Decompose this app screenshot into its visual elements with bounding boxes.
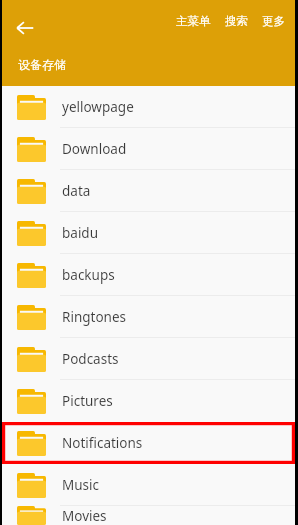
button[interactable]: backups [2,254,295,296]
staticText: Music [62,476,100,494]
staticText: data [62,182,91,200]
staticText: Movies [62,507,107,525]
button[interactable]: baidu [2,212,295,254]
staticText: baidu [62,224,99,242]
staticText: Download [62,140,127,158]
staticText: Ringtones [62,308,126,326]
button[interactable]: Music [2,464,295,506]
staticText: Pictures [62,392,113,410]
button[interactable]: 搜索 [225,14,248,28]
staticText: backups [62,266,115,284]
button[interactable]: Movies [2,506,295,525]
staticText: 设备存储 [18,57,66,72]
button[interactable]: 设备存储 [18,57,66,72]
staticText: 搜索 [225,14,248,28]
staticText: yellowpage [62,98,134,116]
button[interactable]: Ringtones [2,296,295,338]
button[interactable]: yellowpage [2,86,295,128]
staticText: Notifications [62,434,143,452]
button[interactable]: Back [10,13,40,43]
staticText: 更多 [262,14,285,28]
button[interactable]: Pictures [2,380,295,422]
button[interactable]: 主菜单 [176,14,211,28]
staticText: Podcasts [62,350,119,368]
button[interactable]: data [2,170,295,212]
button[interactable]: Download [2,128,295,170]
button[interactable]: Podcasts [2,338,295,380]
staticText: 主菜单 [176,14,211,28]
button[interactable]: 更多 [262,14,285,28]
button[interactable]: Notifications [2,422,295,464]
